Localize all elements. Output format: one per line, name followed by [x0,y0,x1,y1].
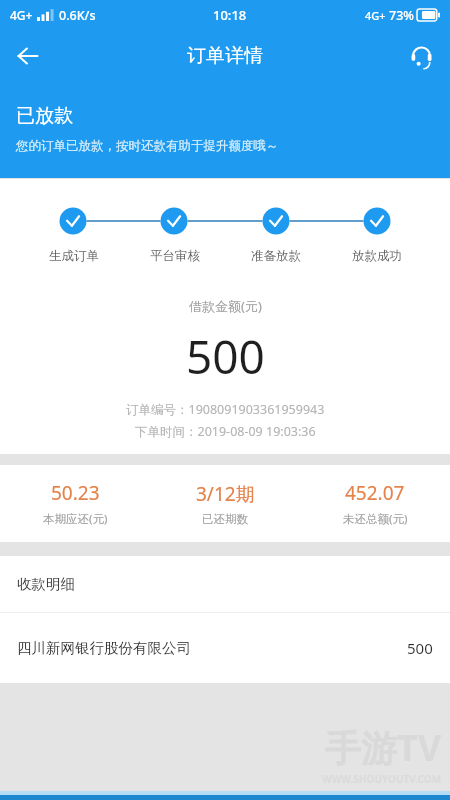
staticText: 50.23 [51,480,100,506]
staticText: 未还总额(元) [343,511,408,527]
staticText: 500 [186,325,265,388]
staticText: 订单详情 [187,44,263,68]
staticText: WWW.SHOUYOUTV.COM [322,772,442,786]
staticText: 准备放款 [251,248,301,264]
staticText: 4G+ [365,8,386,23]
staticText: 452.07 [345,480,405,506]
staticText: 500 [407,638,433,658]
staticText: 借款金额(元) [189,297,262,315]
staticText: 已还期数 [202,512,248,526]
staticText: 0.6K/s [59,7,96,24]
staticText: 手游TV [325,723,442,772]
staticText: 平台审核 [150,248,200,264]
button[interactable]: 四川新网银行股份有限公司 [0,613,450,683]
staticText: 本期应还(元) [43,511,108,527]
staticText: 已放款 [16,104,73,128]
staticText: 4G+ [10,7,33,23]
button[interactable]: Back [6,34,50,78]
button[interactable]: Customer service [400,35,442,77]
staticText: 生成订单 [49,248,99,264]
staticText: 73% [389,7,414,24]
staticText: 收款明细 [17,575,75,593]
staticText: 下单时间：2019-08-09 19:03:36 [135,423,316,440]
staticText: 10:18 [213,6,247,24]
staticText: 3/12期 [196,481,255,507]
staticText: 放款成功 [352,248,402,264]
staticText: 四川新网银行股份有限公司 [17,639,191,657]
staticText: 您的订单已放款，按时还款有助于提升额度哦～ [16,138,279,154]
staticText: 订单编号：1908091903361959943 [126,401,325,418]
